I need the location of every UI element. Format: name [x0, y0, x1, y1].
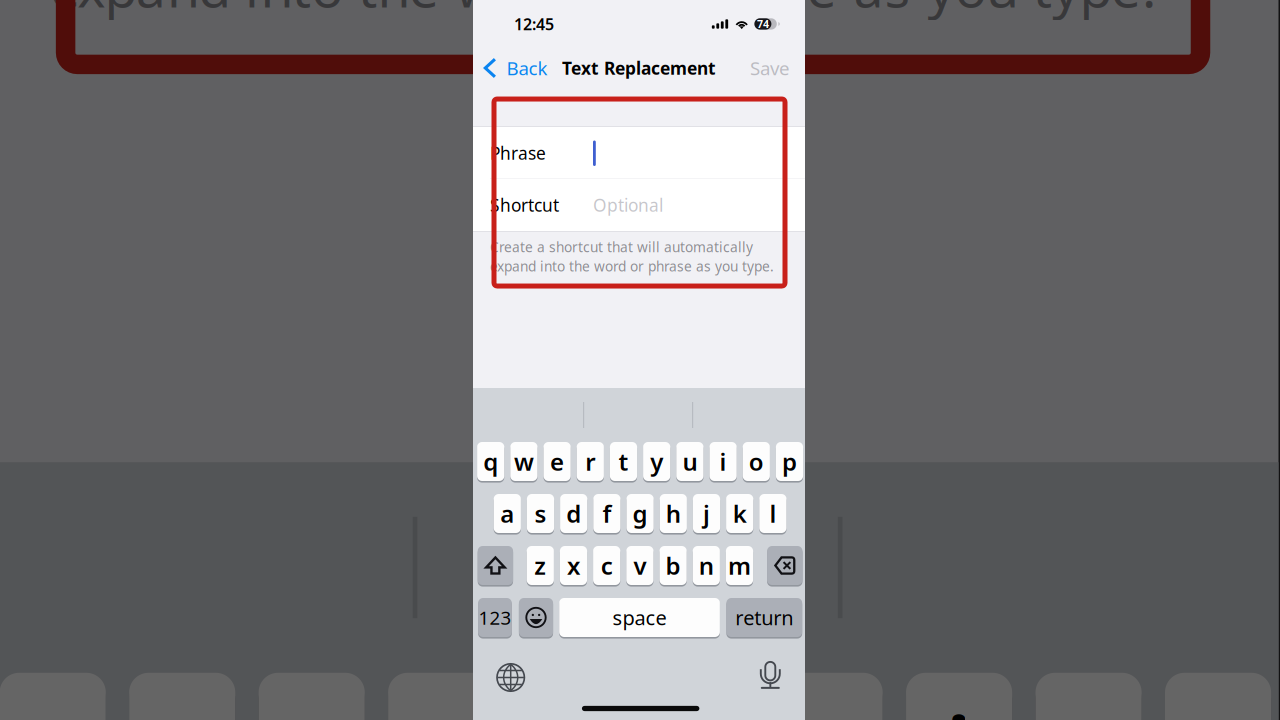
button[interactable]: r	[578, 442, 605, 483]
staticText: h	[666, 498, 681, 529]
button[interactable]: n	[694, 546, 721, 587]
button[interactable]: p	[777, 442, 804, 483]
button[interactable]: a	[495, 494, 522, 535]
staticText: n	[699, 550, 714, 581]
button[interactable]: w	[510, 442, 537, 483]
staticText: u	[683, 446, 698, 477]
button[interactable]: Save	[730, 48, 790, 88]
button[interactable]: l	[759, 494, 786, 535]
button[interactable]: Dictate	[760, 662, 781, 691]
staticText: v	[634, 550, 647, 581]
button[interactable]: h	[660, 494, 687, 535]
staticText: b	[667, 550, 682, 581]
button[interactable]: y	[644, 442, 671, 483]
button[interactable]: k	[727, 494, 754, 535]
button[interactable]: x	[560, 546, 587, 587]
button[interactable]: return	[726, 598, 802, 639]
button[interactable]: l	[760, 494, 787, 535]
staticText: a	[501, 498, 515, 529]
button[interactable]: Next keyboard	[497, 664, 524, 691]
button[interactable]: g	[626, 494, 654, 535]
button[interactable]: o	[744, 442, 771, 483]
button[interactable]: i	[710, 442, 738, 483]
button[interactable]: Phrase	[474, 127, 806, 179]
button[interactable]: z	[527, 546, 554, 587]
button[interactable]: t	[611, 442, 638, 483]
staticText: u	[682, 446, 697, 477]
button[interactable]: s	[527, 494, 554, 535]
button[interactable]: y	[643, 442, 670, 483]
staticText: 74	[758, 17, 770, 31]
button[interactable]: return	[727, 598, 803, 639]
staticText: l	[769, 498, 776, 529]
button[interactable]: m	[726, 546, 753, 587]
button[interactable]: a	[494, 494, 521, 535]
staticText: Phrase	[491, 141, 547, 164]
button[interactable]: j	[694, 494, 721, 535]
button[interactable]: k	[726, 494, 753, 535]
button[interactable]: c	[594, 546, 621, 587]
staticText: v	[633, 550, 646, 581]
button[interactable]: u	[676, 442, 703, 483]
button[interactable]: c	[593, 546, 620, 587]
button[interactable]: Emoji	[519, 598, 553, 639]
button[interactable]: Emoji	[520, 598, 554, 639]
staticText: f	[602, 498, 611, 529]
button[interactable]: p	[776, 442, 803, 483]
button[interactable]: o	[743, 442, 770, 483]
button[interactable]: x	[561, 546, 588, 587]
staticText: Phrase	[490, 141, 546, 164]
button[interactable]: Save	[731, 48, 791, 88]
button[interactable]: w	[511, 442, 538, 483]
button[interactable]: u	[677, 442, 704, 483]
button[interactable]: f	[594, 494, 621, 535]
button[interactable]: q	[477, 442, 504, 483]
button[interactable]: m	[727, 546, 754, 587]
button[interactable]: Delete	[768, 546, 803, 587]
button[interactable]: d	[561, 494, 588, 535]
staticText: l	[770, 498, 777, 529]
button[interactable]: Back	[480, 48, 560, 88]
button[interactable]: Shortcut	[474, 179, 806, 231]
staticText: 74	[757, 17, 769, 31]
button[interactable]: z	[528, 546, 555, 587]
staticText: y	[651, 446, 664, 477]
button[interactable]: e	[543, 442, 571, 483]
button[interactable]: Phrase	[473, 127, 805, 179]
button[interactable]: v	[626, 546, 653, 587]
button[interactable]: d	[560, 494, 587, 535]
staticText: s	[535, 498, 547, 529]
staticText: Save	[751, 56, 791, 80]
button[interactable]: q	[478, 442, 505, 483]
staticText: space	[613, 604, 667, 631]
button[interactable]: Shift	[479, 546, 514, 587]
button[interactable]: b	[660, 546, 688, 587]
button[interactable]: Next keyboard	[498, 664, 525, 691]
button[interactable]: j	[693, 494, 720, 535]
button[interactable]: Back	[479, 48, 559, 88]
staticText: q	[483, 446, 498, 477]
button[interactable]: h	[661, 494, 688, 535]
button[interactable]: t	[610, 442, 637, 483]
button[interactable]: 123	[478, 598, 512, 639]
button[interactable]: i	[709, 442, 737, 483]
button[interactable]: space	[560, 598, 721, 639]
staticText: e	[551, 446, 565, 477]
staticText: Text Replacement	[562, 56, 716, 79]
button[interactable]: Delete	[767, 546, 802, 587]
button[interactable]: Shortcut	[473, 179, 805, 231]
button[interactable]: space	[559, 598, 720, 639]
button[interactable]: b	[659, 546, 687, 587]
button[interactable]: f	[593, 494, 620, 535]
button[interactable]: r	[577, 442, 604, 483]
button[interactable]: e	[544, 442, 572, 483]
button[interactable]: g	[627, 494, 655, 535]
button[interactable]: s	[528, 494, 555, 535]
staticText: b	[666, 550, 681, 581]
button[interactable]: Dictate	[761, 662, 782, 691]
button[interactable]: v	[627, 546, 654, 587]
button[interactable]: n	[693, 546, 720, 587]
button[interactable]: 123	[479, 598, 513, 639]
button[interactable]: Shift	[478, 546, 513, 587]
staticText: k	[734, 498, 748, 529]
